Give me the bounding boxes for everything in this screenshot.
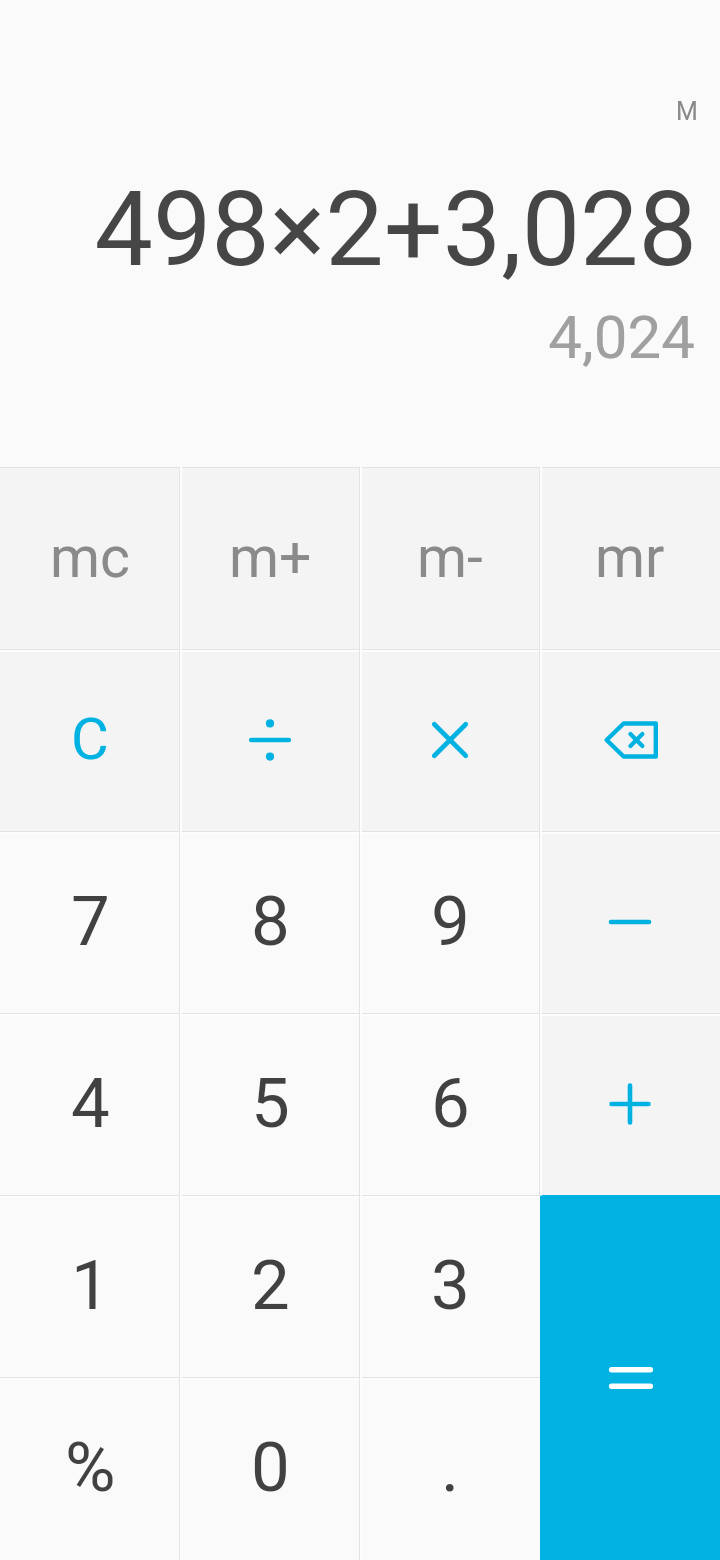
staticText: 5	[251, 1063, 290, 1144]
button[interactable]: m+	[180, 467, 360, 649]
staticText: 4,024	[548, 302, 695, 372]
staticText: C	[71, 705, 109, 773]
staticText: .	[441, 1427, 460, 1508]
staticText: M	[676, 97, 698, 126]
button[interactable]: 2	[180, 1195, 360, 1377]
button[interactable]: Multiply	[360, 649, 540, 831]
button[interactable]: mc	[0, 467, 180, 649]
staticText: 4	[71, 1063, 110, 1144]
button[interactable]: 4	[0, 1013, 180, 1195]
button[interactable]: 9	[360, 831, 540, 1013]
button[interactable]: Minus	[540, 831, 720, 1013]
button[interactable]: 8	[180, 831, 360, 1013]
staticText: 3	[431, 1245, 470, 1326]
staticText: m+	[229, 524, 312, 591]
button[interactable]: mr	[540, 467, 720, 649]
button[interactable]: m-	[360, 467, 540, 649]
button[interactable]: Backspace	[540, 649, 720, 831]
staticText: 9	[431, 881, 470, 962]
button[interactable]: 0	[180, 1377, 360, 1560]
staticText: mr	[595, 524, 665, 591]
button[interactable]: Divide	[180, 649, 360, 831]
staticText: 2	[251, 1245, 290, 1326]
button[interactable]: .	[360, 1377, 540, 1560]
button[interactable]: 1	[0, 1195, 180, 1377]
button[interactable]: Equals	[540, 1195, 720, 1560]
staticText: mc	[50, 524, 130, 591]
button[interactable]: %	[0, 1377, 180, 1560]
staticText: m-	[417, 524, 483, 591]
button[interactable]: 6	[360, 1013, 540, 1195]
staticText: 8	[251, 881, 290, 962]
staticText: %	[65, 1427, 116, 1508]
staticText: 7	[71, 881, 110, 962]
button[interactable]: Plus	[540, 1013, 720, 1195]
staticText: 498×2+3,028	[94, 169, 697, 291]
staticText: 6	[431, 1063, 470, 1144]
staticText: 1	[71, 1245, 110, 1326]
button[interactable]: 7	[0, 831, 180, 1013]
staticText: 0	[251, 1427, 290, 1508]
button[interactable]: C	[0, 649, 180, 831]
button[interactable]: 5	[180, 1013, 360, 1195]
button[interactable]: 3	[360, 1195, 540, 1377]
